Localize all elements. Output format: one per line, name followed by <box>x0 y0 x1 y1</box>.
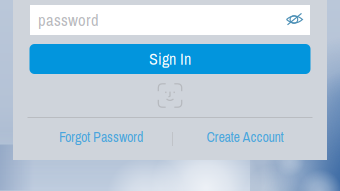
button[interactable]: Create Account <box>173 118 315 160</box>
button[interactable]: Sign in with Face ID <box>157 83 182 108</box>
button[interactable]: Forgot Password <box>25 118 172 160</box>
staticText: Create Account <box>206 128 283 146</box>
button[interactable]: Sign In <box>29 44 310 74</box>
staticText: Sign In <box>149 48 191 70</box>
staticText: password <box>38 9 99 31</box>
staticText: Forgot Password <box>59 128 143 146</box>
button[interactable]: Show password <box>279 5 310 35</box>
